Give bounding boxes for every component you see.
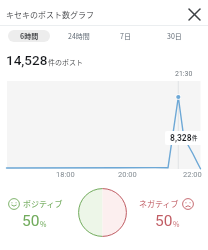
button[interactable]: ネガティブ xyxy=(139,198,194,210)
staticText: 20:00 xyxy=(118,170,137,179)
staticText: 件 xyxy=(192,134,198,142)
staticText: 件のポスト xyxy=(48,57,83,67)
staticText: 18:00 xyxy=(56,170,75,179)
staticText: 8,328 xyxy=(170,133,192,143)
button[interactable]: 30日 xyxy=(152,30,196,42)
staticText: 6時間 xyxy=(20,31,39,41)
staticText: キセキのポスト数グラフ xyxy=(6,9,94,21)
button[interactable]: 7日 xyxy=(103,30,147,42)
staticText: 30日 xyxy=(167,31,182,41)
staticText: 7日 xyxy=(120,31,131,41)
button[interactable]: 24時間 xyxy=(56,30,102,42)
staticText: 24時間 xyxy=(68,31,90,41)
button[interactable]: ポジティブ xyxy=(8,198,63,210)
button[interactable]: 6時間 xyxy=(8,30,50,42)
staticText: ポジティブ xyxy=(23,198,63,210)
staticText: 22:00 xyxy=(183,170,202,179)
staticText: 50 xyxy=(155,212,173,230)
staticText: 21:30 xyxy=(175,70,193,78)
staticText: ネガティブ xyxy=(139,198,179,210)
staticText: 14,528 xyxy=(6,52,48,68)
button[interactable]: Close xyxy=(183,3,205,25)
staticText: % xyxy=(40,219,47,229)
staticText: 50 xyxy=(22,212,40,230)
staticText: % xyxy=(173,219,180,229)
